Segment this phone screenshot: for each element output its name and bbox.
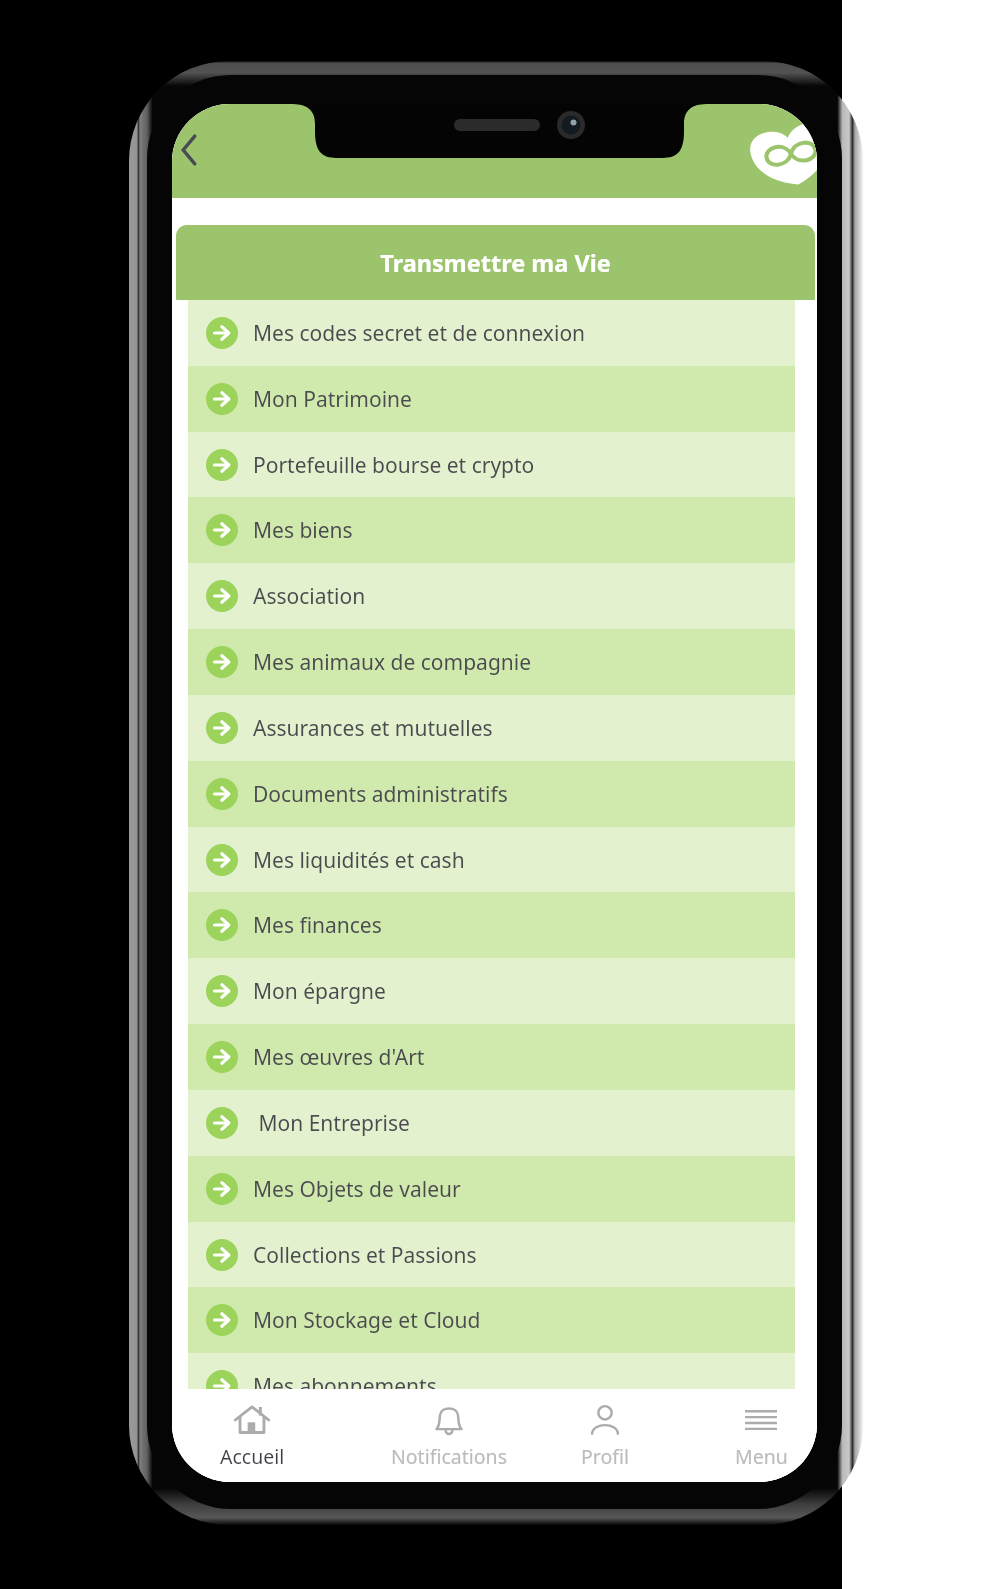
button[interactable]: Logo xyxy=(751,122,817,186)
staticText: Mes abonnements xyxy=(253,1372,437,1401)
staticText: Mes finances xyxy=(253,911,382,940)
button[interactable]: Mes Objets de valeur xyxy=(188,1156,795,1222)
button[interactable]: Mes animaux de compagnie xyxy=(188,629,795,695)
staticText: Assurances et mutuelles xyxy=(253,714,493,743)
button[interactable]: Mon Stockage et Cloud xyxy=(188,1287,795,1353)
button[interactable]: Mes œuvres d'Art xyxy=(188,1024,795,1090)
staticText: Mon Entreprise xyxy=(253,1109,410,1138)
button[interactable]: Back xyxy=(172,126,213,174)
staticText: Mes animaux de compagnie xyxy=(253,648,532,677)
staticText: Mes codes secret et de connexion xyxy=(253,319,586,348)
staticText: Association xyxy=(253,582,366,611)
staticText: Mon Stockage et Cloud xyxy=(253,1306,481,1335)
button[interactable]: Notifications xyxy=(354,1389,544,1482)
staticText: Mon Patrimoine xyxy=(253,385,412,414)
button[interactable]: Mes abonnements xyxy=(188,1353,795,1419)
staticText: Menu xyxy=(735,1443,788,1470)
button[interactable]: Mon Patrimoine xyxy=(188,366,795,432)
staticText: Mes Objets de valeur xyxy=(253,1175,461,1204)
staticText: Transmettre ma Vie xyxy=(380,247,611,279)
button[interactable]: Menu xyxy=(701,1389,817,1482)
button[interactable]: Mes biens xyxy=(188,497,795,563)
button[interactable]: Mon épargne xyxy=(188,958,795,1024)
button[interactable]: Collections et Passions xyxy=(188,1222,795,1288)
button[interactable]: Association xyxy=(188,563,795,629)
staticText: Documents administratifs xyxy=(253,780,508,809)
staticText: Collections et Passions xyxy=(253,1241,477,1270)
button[interactable]: Mes finances xyxy=(188,892,795,958)
button[interactable]: Mes codes secret et de connexion xyxy=(188,300,795,366)
button[interactable]: Assurances et mutuelles xyxy=(188,695,795,761)
staticText: Portefeuille bourse et crypto xyxy=(253,451,535,480)
staticText: Mes biens xyxy=(253,516,353,545)
button[interactable]: Portefeuille bourse et crypto xyxy=(188,432,795,498)
staticText: Accueil xyxy=(220,1443,285,1470)
button[interactable]: Mes liquidités et cash xyxy=(188,827,795,893)
staticText: Mes liquidités et cash xyxy=(253,846,465,875)
button[interactable]: Accueil xyxy=(197,1389,307,1482)
button[interactable]: Profil xyxy=(540,1389,670,1482)
staticText: Mes œuvres d'Art xyxy=(253,1043,425,1072)
button[interactable]: Documents administratifs xyxy=(188,761,795,827)
staticText: Profil xyxy=(581,1443,630,1470)
staticText: Notifications xyxy=(391,1443,507,1470)
staticText: Mon épargne xyxy=(253,977,386,1006)
button[interactable]: Mon Entreprise xyxy=(188,1090,795,1156)
